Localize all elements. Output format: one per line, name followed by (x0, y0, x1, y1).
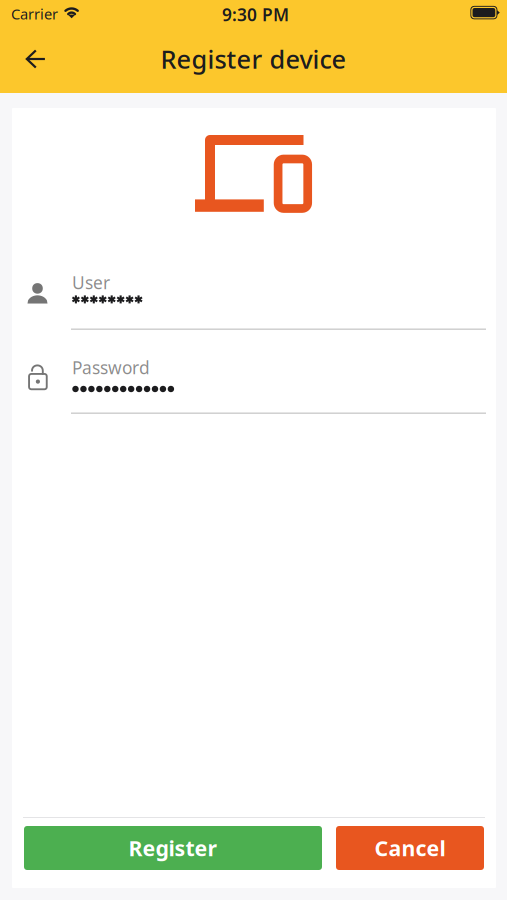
button[interactable]: User (27, 265, 489, 331)
button[interactable]: Cancel (336, 826, 484, 870)
staticText: Register device (160, 42, 346, 76)
staticText: Register (128, 834, 217, 862)
button[interactable]: Password (27, 350, 489, 415)
button[interactable]: Back (13, 36, 59, 82)
staticText: 9:30 PM (222, 3, 289, 26)
staticText: User (72, 271, 110, 294)
staticText: Password (72, 356, 150, 379)
staticText: Cancel (374, 834, 445, 862)
button[interactable]: Register (24, 826, 322, 870)
staticText: Carrier (11, 4, 58, 23)
